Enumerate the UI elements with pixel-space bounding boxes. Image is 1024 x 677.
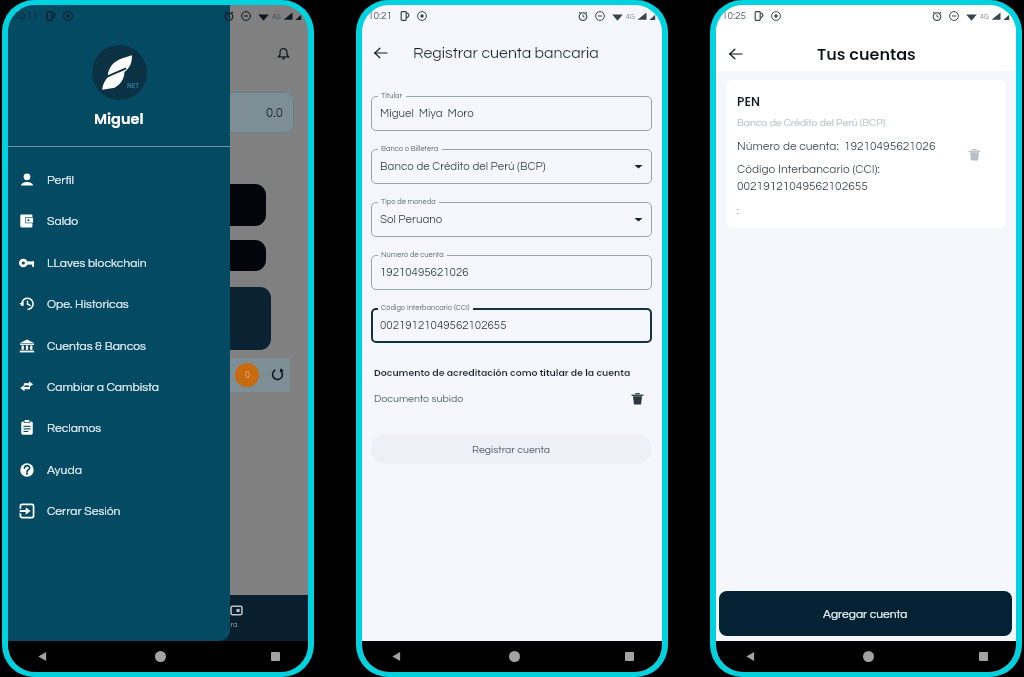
staticText: Perfil: [47, 174, 74, 186]
staticText: 10:11: [14, 11, 39, 21]
staticText: 10:21: [368, 11, 393, 21]
button[interactable]: Delete document: [626, 387, 648, 409]
staticText: Miguel: [94, 109, 144, 129]
staticText: Número de cuenta: 19210495621026: [737, 140, 936, 152]
button[interactable]: Registrar cuenta: [371, 434, 652, 464]
staticText: 00219121049562102655: [380, 320, 507, 332]
button[interactable]: Delete account: [961, 141, 987, 167]
staticText: Cerrar Sesión: [47, 505, 121, 517]
button[interactable]: Back: [716, 32, 756, 76]
button[interactable]: Back: [362, 31, 400, 75]
staticText: Código Interbancario (CCI): [381, 304, 470, 312]
button[interactable]: Reclamos: [8, 407, 230, 448]
staticText: Cuentas & Bancos: [47, 340, 146, 352]
staticText: tera: [224, 621, 238, 629]
button[interactable]: Cuentas & Bancos: [8, 325, 230, 366]
staticText: 4G: [980, 13, 989, 20]
staticText: Banco o Billetera: [381, 145, 439, 153]
staticText: 00219121049562102655: [737, 180, 868, 192]
staticText: Agregar cuenta: [823, 608, 908, 620]
staticText: NET: [127, 81, 139, 90]
staticText: Banco de Crédito del Perú (BCP): [737, 118, 886, 129]
staticText: Saldo: [47, 215, 79, 227]
staticText: Código Interbancario (CCI):: [737, 163, 880, 175]
staticText: Registrar cuenta: [472, 444, 551, 455]
staticText: Número de cuenta: [381, 251, 444, 259]
staticText: PEN: [737, 93, 760, 110]
staticText: 10:25: [722, 11, 747, 21]
staticText: Cambiar a Cambista: [47, 381, 159, 393]
staticText: Reclamos: [47, 422, 102, 434]
staticText: Titular: [381, 92, 403, 100]
button[interactable]: Ayuda: [8, 449, 230, 490]
staticText: Tus cuentas: [817, 43, 916, 65]
button[interactable]: Perfil: [8, 159, 230, 200]
button[interactable]: LLaves blockchain: [8, 242, 230, 283]
staticText: 4G: [626, 13, 635, 20]
staticText: 4G: [272, 13, 281, 20]
staticText: Registrar cuenta bancaria: [413, 45, 599, 61]
button[interactable]: Ope. Historicas: [8, 283, 230, 324]
staticText: Ayuda: [47, 464, 82, 476]
staticText: Ope. Historicas: [47, 298, 129, 310]
staticText: 19210495621026: [380, 267, 469, 279]
staticText: Documento de acreditación como titular d…: [374, 366, 631, 379]
staticText: :: [737, 207, 739, 216]
button[interactable]: Cambiar a Cambista: [8, 366, 230, 407]
staticText: Banco de Crédito del Perú (BCP): [380, 161, 546, 173]
staticText: 0.0: [266, 106, 283, 119]
staticText: LLaves blockchain: [47, 257, 147, 269]
staticText: 0: [245, 371, 250, 380]
button[interactable]: Cerrar Sesión: [8, 490, 230, 531]
button[interactable]: Agregar cuenta: [719, 591, 1012, 636]
staticText: Tipo de moneda: [381, 198, 436, 206]
staticText: Miguel Miya Moro: [380, 108, 474, 120]
button[interactable]: Saldo: [8, 200, 230, 241]
staticText: Sol Peruano: [380, 214, 443, 226]
staticText: Documento subido: [374, 393, 464, 404]
